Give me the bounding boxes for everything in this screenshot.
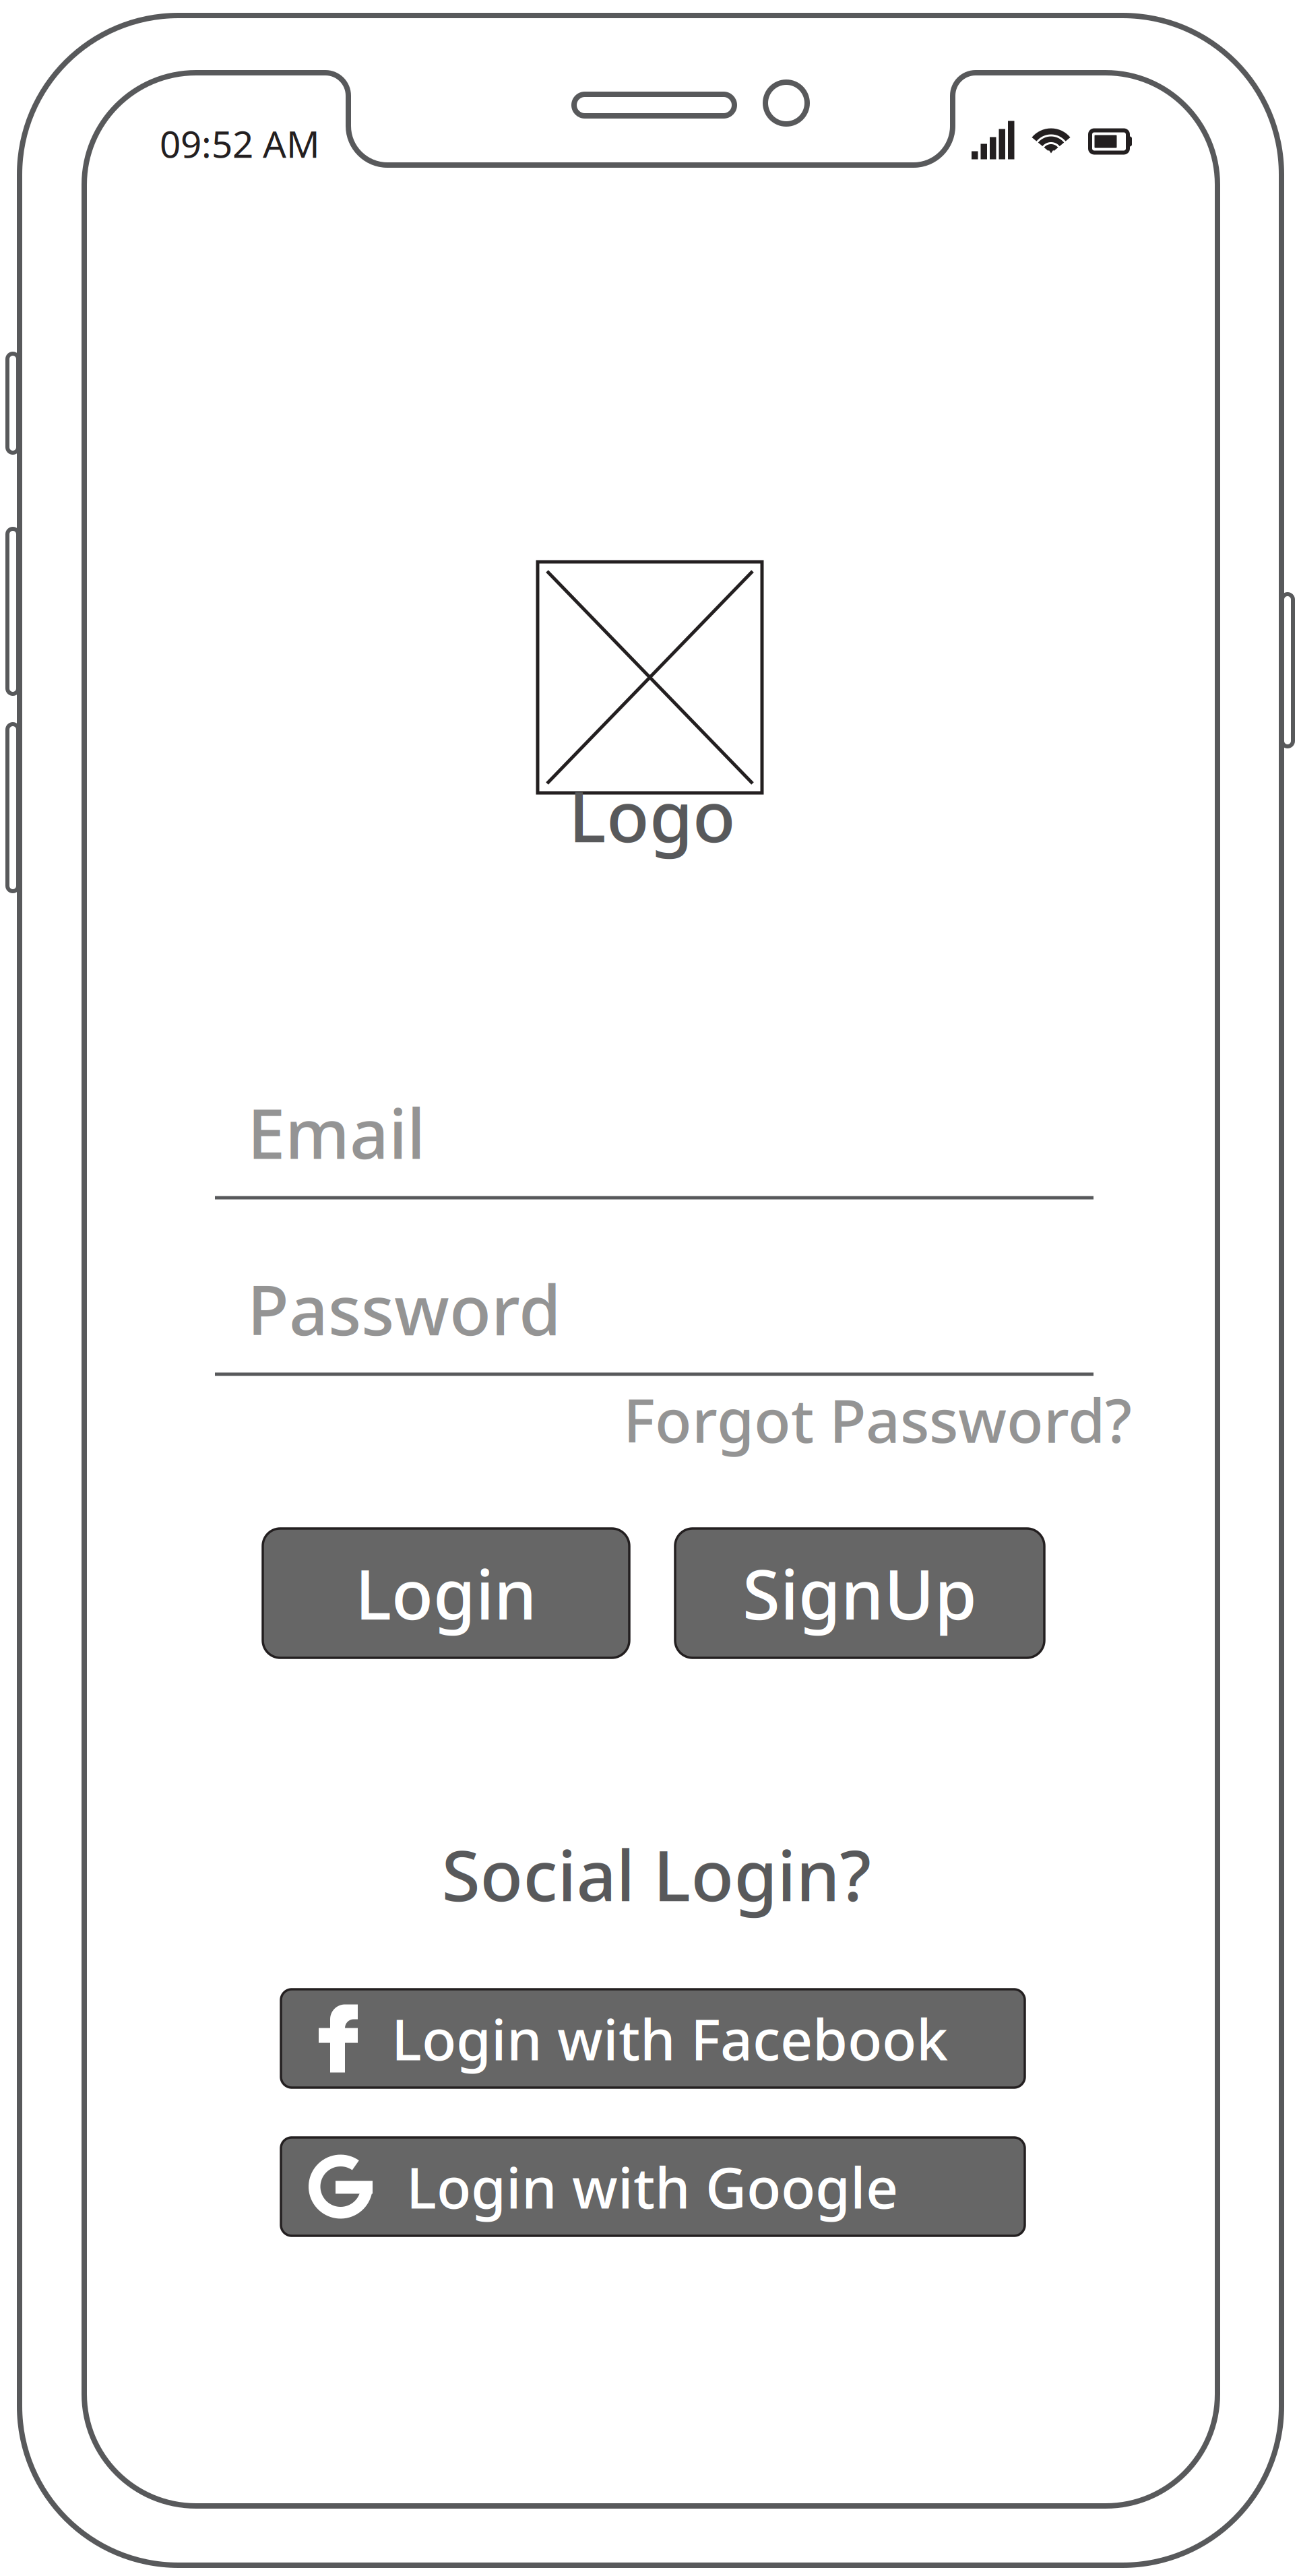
staticText: Login with Google — [406, 2149, 898, 2224]
button[interactable]: Login — [263, 1528, 629, 1658]
staticText: Login with Facebook — [391, 2001, 948, 2076]
button[interactable]: Email — [215, 1117, 1094, 1200]
staticText: Forgot Password? — [623, 1379, 1132, 1459]
button[interactable]: Login with Facebook — [281, 1989, 1025, 2088]
staticText: Logo — [569, 769, 736, 862]
button[interactable]: SignUp — [675, 1528, 1044, 1658]
staticText: Email — [247, 1087, 425, 1178]
button[interactable]: Password — [215, 1293, 1094, 1377]
staticText: 09:52 AM — [160, 119, 320, 168]
staticText: Login — [355, 1548, 537, 1638]
staticText: Password — [247, 1264, 561, 1354]
staticText: Social Login? — [442, 1828, 871, 1921]
staticText: SignUp — [742, 1548, 977, 1638]
button[interactable]: Login with Google — [281, 2137, 1025, 2236]
button[interactable]: Forgot Password? — [215, 1379, 1132, 1459]
